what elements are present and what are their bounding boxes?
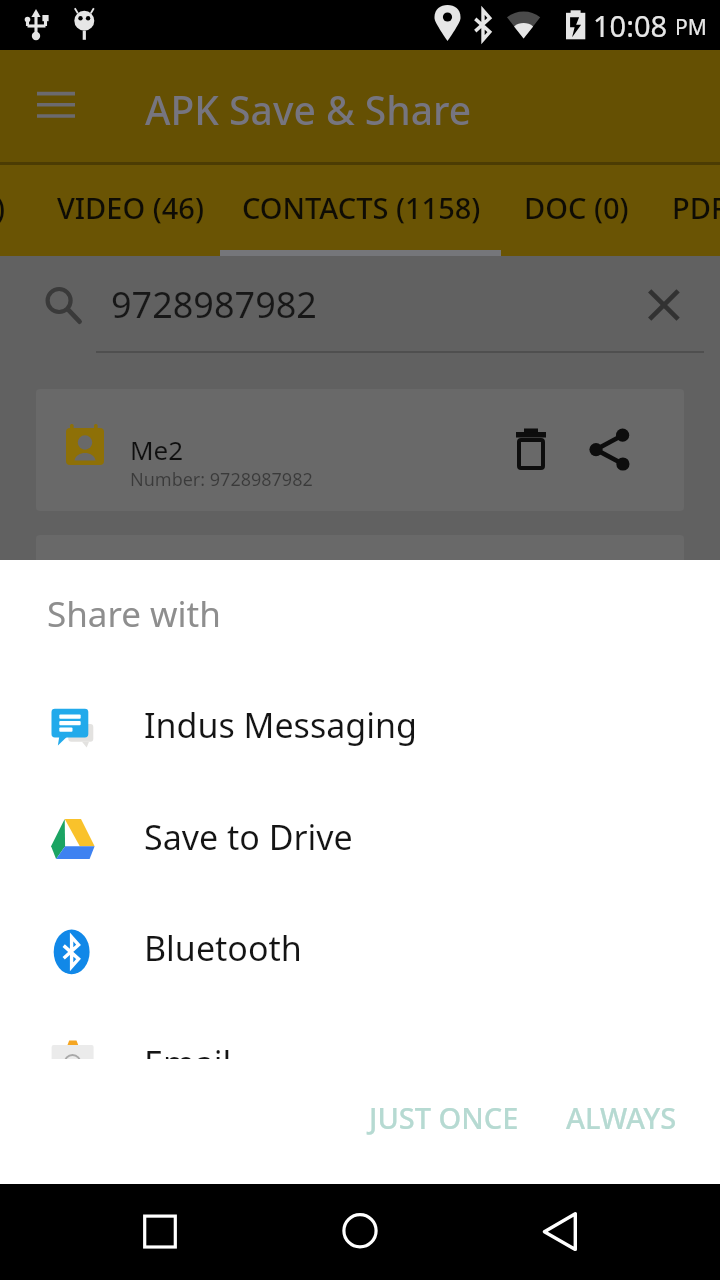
button[interactable]: Recent apps (112, 1184, 208, 1280)
button[interactable]: Home (312, 1184, 408, 1280)
staticText: ) (0, 188, 6, 227)
staticText: Me2 (130, 432, 184, 467)
button[interactable]: VIDEO (46) (33, 165, 229, 256)
button[interactable]: Indus Messaging (0, 689, 720, 769)
staticText: 10:08 (593, 6, 668, 45)
button[interactable]: Open navigation drawer (12, 68, 100, 146)
staticText: PDF (672, 188, 720, 227)
button[interactable]: Search (36, 279, 92, 335)
staticText: JUST ONCE (369, 1098, 519, 1137)
staticText: Number: 9728987982 (130, 467, 313, 492)
button[interactable]: CONTACTS (1158) (218, 165, 505, 256)
staticText: Indus Messaging (144, 702, 417, 748)
button[interactable]: Email (0, 1027, 720, 1107)
button[interactable]: Delete (499, 418, 563, 482)
staticText: VIDEO (46) (57, 188, 205, 227)
staticText: Share with (47, 590, 221, 638)
button[interactable]: Me2 (36, 389, 684, 511)
staticText: PM (675, 13, 707, 42)
button[interactable]: Share (578, 418, 642, 482)
button[interactable]: DOC (0) (500, 165, 653, 256)
button[interactable]: Clear search (636, 278, 692, 334)
button[interactable]: Bluetooth (0, 912, 720, 992)
button[interactable]: PDF (648, 165, 720, 256)
staticText: Save to Drive (144, 814, 353, 860)
staticText: 9728987982 (111, 280, 317, 329)
button[interactable]: JUST ONCE (356, 1089, 532, 1145)
staticText: DOC (0) (524, 188, 629, 227)
staticText: APK Save & Share (145, 83, 472, 136)
staticText: Bluetooth (144, 925, 302, 971)
button[interactable]: ) (0, 165, 30, 256)
button[interactable]: Save to Drive (0, 801, 720, 881)
staticText: ALWAYS (566, 1098, 677, 1137)
staticText: CONTACTS (1158) (242, 188, 481, 227)
button[interactable]: Back (512, 1184, 608, 1280)
staticText: Email (144, 1040, 232, 1086)
button[interactable]: ALWAYS (552, 1089, 690, 1145)
